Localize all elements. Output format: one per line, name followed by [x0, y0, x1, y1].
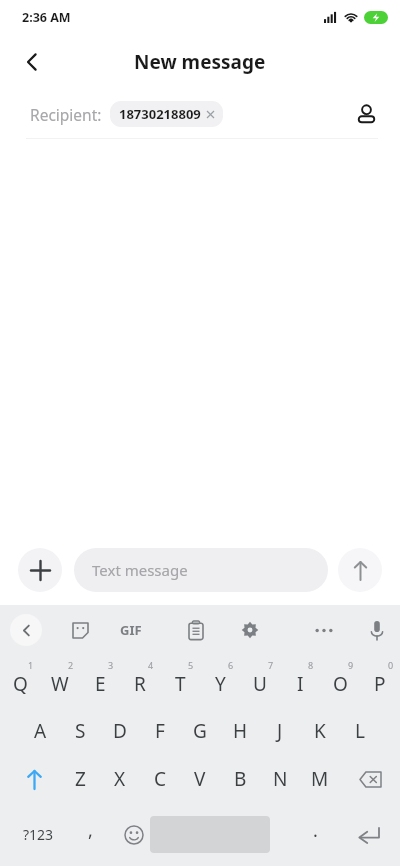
staticText: L — [355, 718, 365, 744]
staticText: A — [34, 718, 47, 744]
button[interactable]: C — [140, 755, 180, 803]
staticText: O — [333, 671, 348, 697]
staticText: M — [311, 766, 329, 792]
staticText: 7 — [268, 659, 274, 671]
button[interactable]: B — [220, 755, 260, 803]
button[interactable]: Clipboard — [178, 612, 214, 648]
button[interactable]: ?123 — [8, 803, 68, 866]
button[interactable]: I — [280, 655, 320, 707]
staticText: 5 — [188, 659, 194, 671]
button[interactable]: Backspace — [348, 755, 392, 803]
staticText: ?123 — [23, 825, 54, 844]
staticText: Z — [75, 766, 86, 792]
staticText: K — [314, 718, 326, 744]
button[interactable]: Send — [338, 548, 382, 592]
button[interactable]: Voice input — [358, 611, 396, 649]
staticText: T — [175, 671, 186, 697]
staticText: V — [194, 766, 206, 792]
button[interactable]: O — [320, 655, 360, 707]
button[interactable]: GIF — [120, 612, 156, 648]
staticText: Q — [13, 671, 28, 697]
staticText: 18730218809 — [119, 105, 201, 123]
staticText: Y — [215, 671, 226, 697]
button[interactable]: More options — [304, 610, 344, 650]
button[interactable]: J — [260, 707, 300, 755]
button[interactable]: Comma — [68, 803, 112, 866]
staticText: W — [51, 671, 69, 697]
staticText: I — [297, 671, 304, 697]
button[interactable]: W — [40, 655, 80, 707]
staticText: New message — [134, 49, 266, 75]
staticText: 3 — [108, 659, 114, 671]
button[interactable]: Stickers — [62, 612, 98, 648]
button[interactable]: Collapse toolbar — [10, 614, 42, 646]
button[interactable]: X — [100, 755, 140, 803]
staticText: C — [154, 766, 167, 792]
button[interactable]: Enter — [344, 803, 394, 866]
button[interactable]: Y — [200, 655, 240, 707]
button[interactable]: Q — [0, 655, 40, 707]
staticText: . — [313, 818, 318, 843]
staticText: , — [88, 818, 93, 843]
button[interactable]: F — [140, 707, 180, 755]
staticText: GIF — [120, 621, 142, 639]
button[interactable]: H — [220, 707, 260, 755]
staticText: Text message — [92, 560, 188, 580]
button[interactable]: D — [100, 707, 140, 755]
staticText: P — [374, 671, 386, 697]
button[interactable]: M — [300, 755, 340, 803]
staticText: 4 — [148, 659, 154, 671]
button[interactable]: Text message — [74, 548, 328, 592]
staticText: E — [95, 671, 106, 697]
button[interactable]: Add attachment — [18, 548, 62, 592]
staticText: S — [75, 718, 86, 744]
button[interactable]: Shift — [12, 755, 56, 803]
button[interactable]: Z — [60, 755, 100, 803]
button[interactable]: Settings — [232, 612, 268, 648]
staticText: 2:36 AM — [22, 9, 71, 26]
staticText: 9 — [348, 659, 354, 671]
staticText: X — [114, 766, 126, 792]
staticText: N — [273, 766, 288, 792]
staticText: R — [134, 671, 146, 697]
button[interactable]: G — [180, 707, 220, 755]
staticText: D — [113, 718, 127, 744]
button[interactable]: R — [120, 655, 160, 707]
button[interactable]: Contacts — [346, 94, 386, 134]
staticText: 1 — [28, 659, 34, 671]
button[interactable]: 18730218809 — [110, 101, 223, 127]
staticText: J — [277, 718, 283, 744]
staticText: F — [155, 718, 165, 744]
button[interactable]: Emoji — [112, 803, 156, 866]
staticText: 8 — [308, 659, 314, 671]
button[interactable]: T — [160, 655, 200, 707]
button[interactable]: A — [20, 707, 60, 755]
staticText: 6 — [228, 659, 234, 671]
button[interactable]: E — [80, 655, 120, 707]
button[interactable]: S — [60, 707, 100, 755]
button[interactable]: Back — [10, 40, 54, 84]
staticText: H — [233, 718, 248, 744]
button[interactable]: V — [180, 755, 220, 803]
button[interactable]: U — [240, 655, 280, 707]
staticText: U — [253, 671, 267, 697]
staticText: Recipient: — [30, 104, 102, 125]
button[interactable]: K — [300, 707, 340, 755]
staticText: 2 — [68, 659, 74, 671]
staticText: 0 — [388, 659, 394, 671]
button[interactable]: P — [360, 655, 400, 707]
staticText: B — [234, 766, 247, 792]
button[interactable]: N — [260, 755, 300, 803]
button[interactable]: L — [340, 707, 380, 755]
staticText: G — [193, 718, 207, 744]
button[interactable]: Period — [290, 803, 340, 866]
